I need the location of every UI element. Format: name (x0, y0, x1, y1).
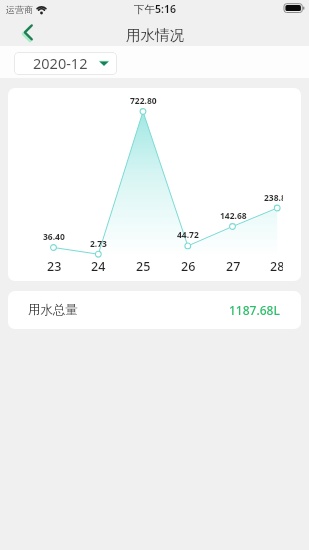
staticText: 44.72 (177, 229, 199, 241)
staticText: 26 (181, 258, 196, 275)
staticText: 下午5:16 (134, 2, 176, 16)
staticText: 36.40 (43, 231, 65, 243)
staticText: 1187.68L (229, 302, 280, 318)
staticText: 用水情况 (126, 26, 184, 44)
button[interactable] (10, 18, 46, 46)
staticText: 用水总量 (28, 302, 78, 318)
staticText: 2.73 (90, 238, 107, 250)
button[interactable]: 2020-12 (14, 52, 117, 75)
staticText: 运营商 (6, 4, 33, 15)
staticText: 27 (226, 258, 241, 275)
staticText: 24 (91, 258, 106, 275)
staticText: 28 (270, 258, 283, 275)
staticText: 142.68 (220, 210, 247, 222)
staticText: 238.85 (264, 192, 283, 204)
staticText: 2020-12 (33, 53, 88, 73)
button[interactable]: 用水总量 (8, 291, 301, 329)
staticText: 722.80 (130, 95, 157, 107)
staticText: 23 (47, 258, 62, 275)
staticText: 25 (136, 258, 151, 275)
